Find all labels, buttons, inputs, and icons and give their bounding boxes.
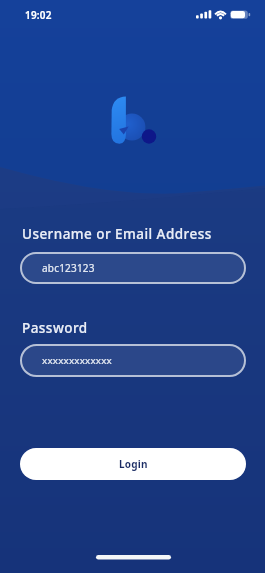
staticText: 19:02 [25,8,52,22]
staticText: Password [22,319,88,337]
staticText: abc123123 [42,261,95,275]
button[interactable]: abc123123 [20,252,246,284]
button[interactable]: Login [20,448,246,480]
staticText: xxxxxxxxxxxxx [42,354,112,367]
staticText: Username or Email Address [22,225,212,243]
staticText: Login [119,457,148,471]
button[interactable]: xxxxxxxxxxxxx [20,344,246,377]
